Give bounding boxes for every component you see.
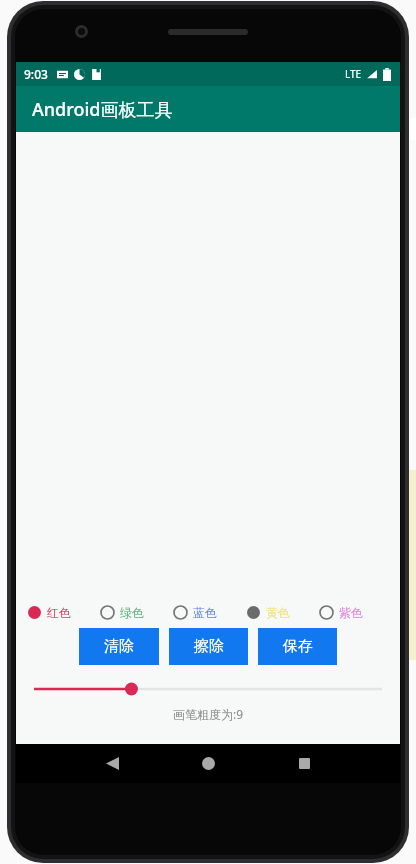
button[interactable]: Brush thickness [34, 681, 382, 697]
staticText: LTE [345, 67, 362, 81]
staticText: 保存 [283, 637, 313, 656]
button[interactable]: 紫色 [319, 605, 392, 620]
staticText: 黄色 [266, 605, 290, 620]
button[interactable]: 绿色 [100, 605, 173, 620]
button[interactable]: 黄色 [246, 605, 319, 620]
button[interactable]: 保存 [258, 628, 337, 665]
staticText: 蓝色 [193, 605, 217, 620]
staticText: 红色 [47, 605, 71, 620]
staticText: 绿色 [120, 605, 144, 620]
button[interactable]: 清除 [79, 628, 159, 665]
staticText: 擦除 [194, 637, 224, 656]
button[interactable]: Back [82, 744, 142, 783]
staticText: 9:03 [24, 66, 48, 82]
staticText: 画笔粗度为:9 [16, 706, 400, 722]
button[interactable]: 擦除 [169, 628, 248, 665]
button[interactable]: Home [178, 744, 238, 783]
button[interactable]: Recent apps [274, 744, 334, 783]
button[interactable]: 蓝色 [173, 605, 246, 620]
staticText: 紫色 [339, 605, 363, 620]
staticText: 清除 [104, 637, 134, 656]
button[interactable]: 红色 [27, 605, 100, 620]
staticText: Android画板工具 [32, 97, 173, 122]
